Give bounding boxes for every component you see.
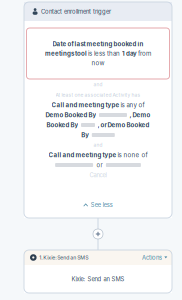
staticText: Actions xyxy=(142,254,162,261)
staticText: See less xyxy=(91,201,113,208)
staticText: Booked By xyxy=(46,121,78,129)
staticText: 1. Kixie: Send an SMS xyxy=(39,254,88,261)
staticText: , or Demo Booked xyxy=(98,121,150,129)
staticText: Kixie: Send an SMS xyxy=(71,275,124,283)
staticText: and xyxy=(93,142,102,148)
staticText: Date of last meeting booked in xyxy=(52,40,143,48)
staticText: now xyxy=(91,59,104,67)
button[interactable]: Add action xyxy=(91,227,104,240)
staticText: At least one associated Activity has xyxy=(55,92,140,98)
staticText: and xyxy=(93,82,102,87)
staticText: Call and meeting type is any of xyxy=(51,101,144,109)
button[interactable]: See less xyxy=(83,200,113,210)
staticText: By xyxy=(81,131,89,139)
staticText: meetings tool is less than 1 day from xyxy=(45,50,151,57)
button[interactable]: Actions xyxy=(142,254,167,261)
staticText: Call and meeting type is none of xyxy=(48,151,147,159)
staticText: , Demo xyxy=(130,111,151,119)
staticText: Cancel xyxy=(89,171,106,179)
staticText: Contact enrollment trigger xyxy=(41,8,111,15)
staticText: Demo Booked By xyxy=(45,111,96,119)
button[interactable]: Contact enrollment trigger xyxy=(24,2,172,21)
staticText: or xyxy=(96,161,102,169)
